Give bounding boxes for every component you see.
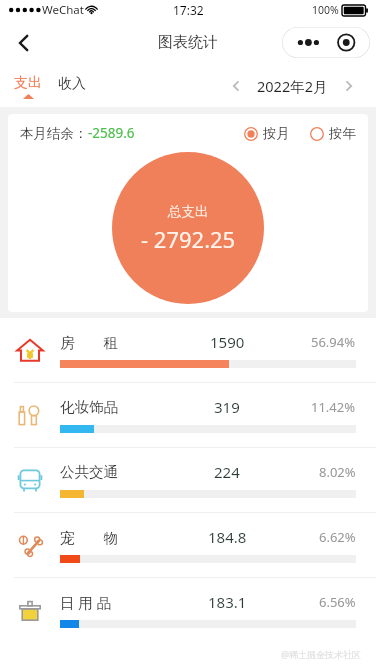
staticText: 6.56% xyxy=(319,593,356,611)
staticText: 183.1 xyxy=(208,592,247,612)
staticText: 化妆饰品 xyxy=(60,398,118,416)
staticText: 收入 xyxy=(58,75,86,93)
button[interactable]: 日 用 品 xyxy=(0,578,376,642)
button[interactable]: Back xyxy=(6,25,42,61)
staticText: 184.8 xyxy=(208,527,247,547)
staticText: 按年 xyxy=(329,125,356,142)
staticText: - 2792.25 xyxy=(141,224,236,254)
staticText: 总支出 xyxy=(168,203,209,220)
staticText: -2589.6 xyxy=(88,124,135,142)
staticText: 8.02% xyxy=(319,463,356,481)
staticText: 6.62% xyxy=(319,528,356,546)
staticText: @稀土掘金技术社区 xyxy=(281,648,362,660)
button[interactable]: Mini program menu xyxy=(282,27,370,58)
button[interactable]: 按年 xyxy=(310,125,356,142)
staticText: WeChat xyxy=(42,2,84,18)
button[interactable]: 公共交通 xyxy=(0,448,376,512)
staticText: 公共交通 xyxy=(60,463,118,481)
staticText: 房 租 xyxy=(60,332,118,352)
button[interactable]: 宠 物 xyxy=(0,513,376,577)
staticText: 2022年2月 xyxy=(257,76,328,96)
staticText: 100% xyxy=(312,3,339,17)
button[interactable]: Previous month xyxy=(223,73,249,99)
staticText: 319 xyxy=(214,397,240,417)
button[interactable]: 总支出 xyxy=(112,152,264,304)
button[interactable]: 化妆饰品 xyxy=(0,383,376,447)
staticText: 1590 xyxy=(210,332,245,352)
button[interactable]: Next month xyxy=(336,73,362,99)
staticText: 11.42% xyxy=(311,398,356,416)
staticText: 支出 xyxy=(14,74,42,92)
button[interactable]: 按月 xyxy=(244,125,290,142)
staticText: 56.94% xyxy=(311,333,356,351)
staticText: 17:32 xyxy=(173,2,204,18)
staticText: 本月结余： xyxy=(20,125,88,142)
staticText: 按月 xyxy=(263,125,290,142)
staticText: 图表统计 xyxy=(158,33,218,52)
button[interactable]: 房 租 xyxy=(0,318,376,382)
staticText: 日 用 品 xyxy=(60,592,112,612)
staticText: 宠 物 xyxy=(60,527,118,547)
button[interactable]: 支出 xyxy=(14,74,42,99)
staticText: 224 xyxy=(214,462,240,482)
button[interactable]: 收入 xyxy=(58,75,86,93)
